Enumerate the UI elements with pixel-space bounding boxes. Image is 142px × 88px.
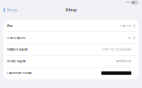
button[interactable]: Имя: [3, 20, 138, 32]
button[interactable]: Название модели: [3, 44, 138, 56]
staticText: iPadOS версия: [7, 36, 25, 39]
staticText: Название модели: [7, 48, 28, 51]
staticText: Серийный номер: [7, 71, 32, 75]
button[interactable]: iPadOS версия: [3, 32, 138, 44]
button[interactable]: Серийный номер: [3, 67, 138, 79]
staticText: Номер модели: [7, 60, 26, 63]
staticText: iPad Pro (12,9 дюйма): [102, 48, 131, 51]
staticText: Назад: [7, 8, 17, 12]
staticText: iPad Pro: [119, 24, 131, 28]
staticText: Обзор: [65, 8, 76, 12]
staticText: Имя: [7, 24, 12, 28]
button[interactable]: Номер модели: [3, 56, 138, 67]
staticText: MHNF3RU/A: [116, 60, 131, 63]
button[interactable]: Назад: [0, 5, 20, 14]
staticText: 18.1: [127, 36, 131, 39]
